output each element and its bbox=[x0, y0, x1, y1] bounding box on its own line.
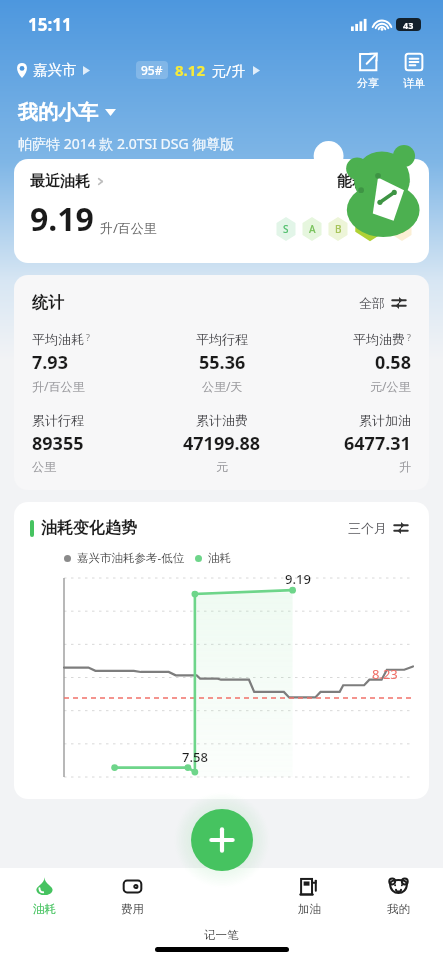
staticText: 油耗 bbox=[208, 551, 231, 565]
button[interactable]: 记一笔 bbox=[191, 809, 253, 871]
button[interactable]: 95# bbox=[136, 56, 260, 84]
staticText: A bbox=[309, 222, 316, 236]
staticText: ? bbox=[86, 331, 90, 343]
staticText: 0.58 bbox=[375, 350, 411, 375]
staticText: 47199.88 bbox=[183, 431, 261, 456]
other: 加油 bbox=[299, 876, 320, 897]
staticText: 三个月 bbox=[348, 520, 387, 536]
staticText: 升/百公里 bbox=[32, 378, 85, 394]
button[interactable]: 油耗 bbox=[0, 874, 88, 918]
staticText: 9.19 bbox=[30, 197, 94, 241]
staticText: 费用 bbox=[121, 902, 144, 916]
staticText: 6477.31 bbox=[344, 431, 411, 456]
staticText: 7.58 bbox=[182, 748, 208, 766]
button[interactable]: 详单 bbox=[401, 51, 427, 90]
staticText: ? bbox=[407, 331, 411, 343]
staticText: 8.23 bbox=[372, 665, 398, 683]
button[interactable]: 分享 bbox=[355, 51, 381, 90]
staticText: 平均油费 bbox=[353, 331, 405, 347]
other: 分享 bbox=[357, 51, 379, 73]
staticText: 累计油费 bbox=[196, 412, 248, 428]
button[interactable]: 全部 bbox=[355, 291, 411, 315]
staticText: 嘉兴市油耗参考-低位 bbox=[77, 550, 185, 566]
button[interactable]: 最近油耗 bbox=[14, 159, 429, 263]
staticText: 全部 bbox=[359, 295, 385, 311]
button[interactable]: 我的 bbox=[354, 874, 443, 918]
staticText: 元/公里 bbox=[370, 378, 411, 394]
button[interactable]: 嘉兴市 bbox=[16, 57, 90, 83]
staticText: 43 bbox=[403, 19, 414, 31]
staticText: 89355 bbox=[32, 431, 84, 456]
staticText: 油耗 bbox=[33, 902, 56, 916]
other: 筛选 bbox=[391, 295, 407, 311]
staticText: 我的小车 bbox=[18, 100, 98, 125]
staticText: 详单 bbox=[403, 76, 425, 90]
button[interactable]: 三个月 bbox=[344, 516, 413, 540]
staticText: 8.12 bbox=[175, 60, 205, 80]
staticText: S bbox=[283, 222, 289, 236]
staticText: 最近油耗 bbox=[30, 172, 90, 191]
staticText: 加油 bbox=[298, 902, 321, 916]
staticText: 元/升 bbox=[212, 61, 246, 80]
staticText: 平均油耗 bbox=[32, 331, 84, 347]
staticText: 累计行程 bbox=[32, 412, 84, 428]
staticText: 公里 bbox=[32, 459, 56, 474]
staticText: 统计 bbox=[32, 293, 64, 313]
staticText: 油耗变化趋势 bbox=[41, 518, 137, 538]
staticText: 帕萨特 2014 款 2.0TSI DSG 御尊版 bbox=[18, 134, 235, 153]
staticText: B bbox=[335, 222, 342, 236]
staticText: 元 bbox=[216, 459, 228, 474]
staticText: 升 bbox=[399, 459, 411, 474]
button[interactable]: 我的小车 bbox=[18, 98, 116, 127]
staticText: 分享 bbox=[357, 76, 379, 90]
staticText: C bbox=[365, 212, 376, 234]
staticText: 我的 bbox=[387, 902, 410, 916]
staticText: 能耗评级 bbox=[337, 172, 397, 191]
other: 油耗 bbox=[34, 876, 55, 897]
staticText: 7.93 bbox=[32, 350, 68, 375]
staticText: 95# bbox=[141, 62, 163, 78]
staticText: 记一笔 bbox=[204, 928, 239, 942]
staticText: 55.36 bbox=[199, 350, 246, 375]
other: 费用 bbox=[122, 876, 143, 897]
staticText: 15:11 bbox=[28, 13, 72, 36]
staticText: 平均行程 bbox=[196, 331, 248, 347]
other: 我的 bbox=[388, 876, 409, 897]
staticText: 累计加油 bbox=[359, 412, 411, 428]
other: 详单 bbox=[403, 51, 425, 73]
staticText: 嘉兴市 bbox=[33, 61, 77, 79]
staticText: 9.19 bbox=[285, 570, 311, 588]
button[interactable]: 加油 bbox=[265, 874, 354, 918]
staticText: 升/百公里 bbox=[100, 219, 157, 237]
staticText: D bbox=[398, 222, 406, 236]
staticText: 公里/天 bbox=[202, 378, 243, 394]
other: 筛选 bbox=[393, 520, 409, 536]
button[interactable]: 费用 bbox=[88, 874, 176, 918]
